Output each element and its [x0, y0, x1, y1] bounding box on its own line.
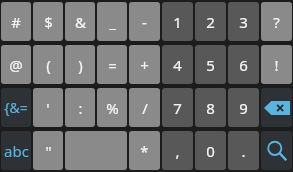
staticText: 4: [173, 55, 182, 75]
staticText: ,: [175, 141, 180, 161]
staticText: @: [9, 55, 23, 75]
button[interactable]: 3: [228, 2, 259, 41]
button[interactable]: $: [33, 2, 63, 41]
button[interactable]: %: [97, 88, 127, 127]
staticText: =: [108, 55, 117, 75]
staticText: (: [46, 55, 51, 75]
staticText: !: [274, 55, 279, 75]
staticText: :: [78, 98, 83, 118]
button[interactable]: Search: [261, 131, 292, 170]
staticText: 2: [206, 12, 215, 32]
staticText: +: [140, 55, 149, 75]
button[interactable]: 8: [195, 88, 226, 127]
button[interactable]: {&=: [1, 88, 31, 127]
button[interactable]: &: [65, 2, 95, 41]
button[interactable]: ): [65, 45, 95, 84]
button[interactable]: ': [33, 88, 63, 127]
staticText: 8: [206, 98, 215, 118]
button[interactable]: ?: [261, 2, 292, 41]
staticText: *: [140, 141, 149, 161]
button[interactable]: 6: [228, 45, 259, 84]
button[interactable]: ": [33, 131, 63, 170]
button[interactable]: (: [33, 45, 63, 84]
button[interactable]: !: [261, 45, 292, 84]
button[interactable]: 9: [228, 88, 259, 127]
staticText: {&=: [4, 98, 28, 117]
button[interactable]: /: [129, 88, 160, 127]
button[interactable]: 1: [162, 2, 193, 41]
staticText: %: [106, 98, 119, 118]
button[interactable]: =: [97, 45, 127, 84]
button[interactable]: .: [228, 131, 259, 170]
button[interactable]: 4: [162, 45, 193, 84]
button[interactable]: *: [129, 131, 160, 170]
staticText: #: [11, 12, 21, 32]
button[interactable]: abc: [1, 131, 31, 170]
button[interactable]: Backspace: [261, 88, 292, 127]
staticText: &: [75, 12, 86, 32]
staticText: -: [142, 12, 147, 32]
staticText: ?: [273, 12, 280, 32]
staticText: $: [44, 12, 53, 32]
staticText: ': [46, 98, 50, 118]
staticText: 9: [239, 98, 248, 118]
staticText: ): [78, 55, 83, 75]
button[interactable]: _: [97, 2, 127, 41]
staticText: ": [45, 141, 52, 161]
button[interactable]: Space: [65, 131, 127, 170]
staticText: _: [109, 12, 116, 32]
button[interactable]: 2: [195, 2, 226, 41]
staticText: 1: [173, 12, 182, 32]
button[interactable]: @: [1, 45, 31, 84]
button[interactable]: ,: [162, 131, 193, 170]
button[interactable]: 7: [162, 88, 193, 127]
staticText: 6: [239, 55, 248, 75]
staticText: .: [241, 141, 246, 161]
staticText: /: [142, 98, 148, 118]
button[interactable]: #: [1, 2, 31, 41]
staticText: 7: [173, 98, 182, 118]
staticText: 0: [206, 141, 215, 161]
staticText: 5: [206, 55, 215, 75]
staticText: 3: [239, 12, 248, 32]
button[interactable]: -: [129, 2, 160, 41]
staticText: abc: [4, 141, 29, 161]
button[interactable]: 0: [195, 131, 226, 170]
button[interactable]: 5: [195, 45, 226, 84]
button[interactable]: :: [65, 88, 95, 127]
button[interactable]: +: [129, 45, 160, 84]
